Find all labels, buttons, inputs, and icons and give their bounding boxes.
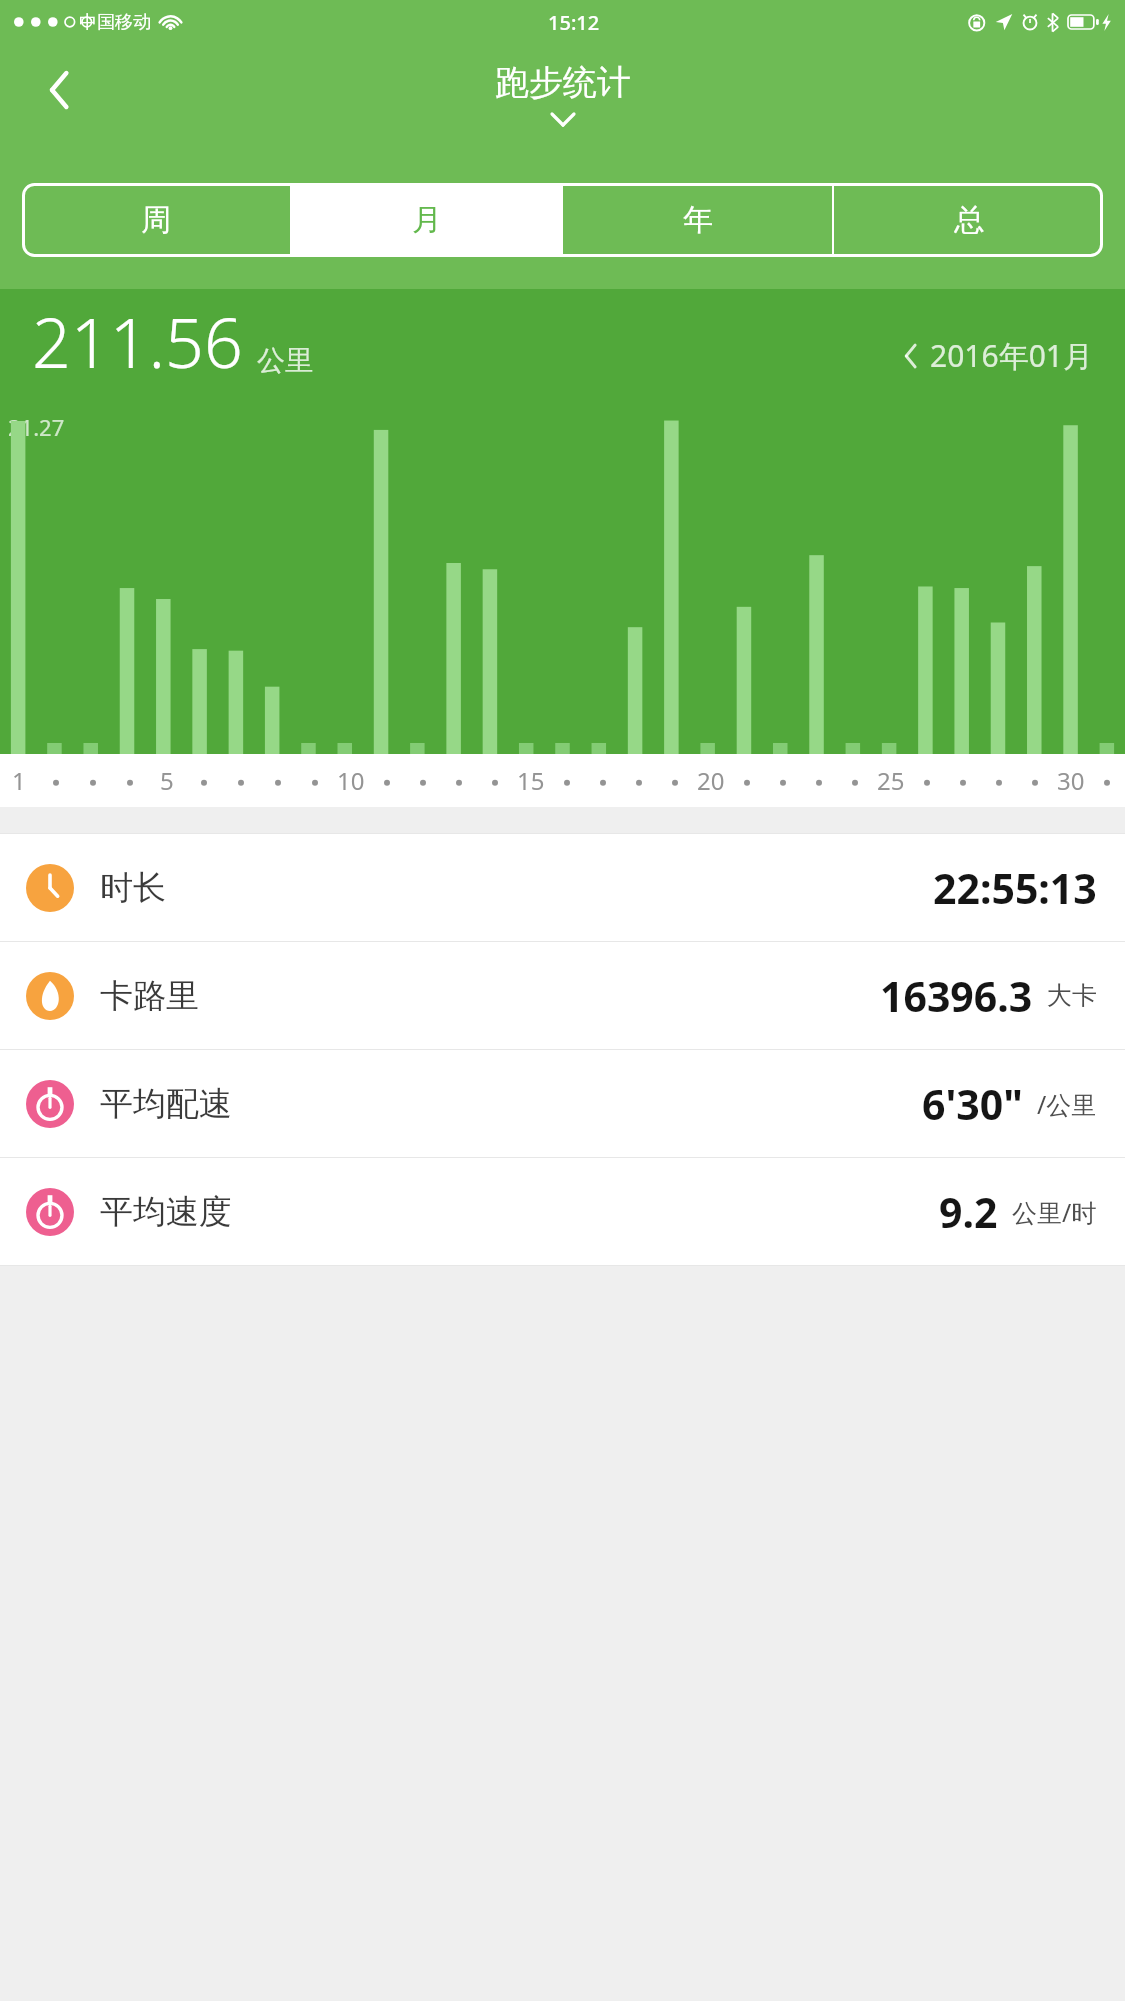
staticText: 211.56 [32, 295, 243, 388]
button[interactable]: 2016年01月 [905, 335, 1093, 376]
staticText: 周 [141, 201, 171, 239]
button[interactable]: 平均配速 [0, 1050, 1125, 1157]
staticText: 15:12 [548, 9, 600, 36]
staticText: 25 [877, 764, 905, 797]
staticText: 30 [1057, 764, 1085, 797]
staticText: 月 [412, 201, 442, 239]
staticText: 卡路里 [100, 975, 199, 1017]
button[interactable]: 年 [563, 183, 832, 257]
staticText: 16396.3 [880, 968, 1033, 1024]
staticText: 22:55:13 [933, 860, 1097, 916]
staticText: 公里 [257, 343, 313, 378]
button[interactable]: 跑步统计 [495, 61, 631, 126]
staticText: 9.2 [939, 1184, 998, 1240]
staticText: 21.27 [8, 412, 65, 442]
staticText: 2016年01月 [930, 335, 1093, 376]
staticText: /公里 [1037, 1087, 1097, 1121]
staticText: 平均配速 [100, 1083, 232, 1125]
staticText: 平均速度 [100, 1191, 232, 1233]
staticText: 中国移动 [79, 11, 151, 34]
staticText: 年 [683, 201, 713, 239]
staticText: 5 [160, 764, 174, 797]
button[interactable]: 总 [834, 183, 1103, 257]
staticText: 时长 [100, 867, 166, 909]
staticText: 公里/时 [1012, 1195, 1097, 1229]
staticText: 10 [337, 764, 365, 797]
staticText: 总 [954, 201, 984, 239]
staticText: 1 [12, 764, 26, 797]
button[interactable]: 时长 [0, 834, 1125, 941]
staticText: 跑步统计 [495, 61, 631, 104]
button[interactable]: Back [30, 60, 90, 120]
staticText: 15 [517, 764, 545, 797]
staticText: 20 [697, 764, 725, 797]
staticText: 6'30" [922, 1076, 1023, 1132]
button[interactable]: 平均速度 [0, 1158, 1125, 1265]
staticText: 大卡 [1047, 980, 1097, 1011]
button[interactable]: 月 [292, 183, 561, 257]
button[interactable]: 周 [22, 183, 290, 257]
button[interactable]: 卡路里 [0, 942, 1125, 1049]
